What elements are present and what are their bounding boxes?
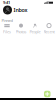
staticText: Files xyxy=(3,29,11,34)
button[interactable]: Account xyxy=(3,5,12,14)
staticText: 9:41 xyxy=(3,0,10,5)
button[interactable]: Files xyxy=(0,24,14,33)
staticText: Pinned xyxy=(1,18,12,23)
staticText: Recent xyxy=(43,29,54,34)
staticText: Inbox xyxy=(13,6,27,14)
button[interactable]: People xyxy=(28,24,42,33)
button[interactable]: Recent xyxy=(42,24,56,33)
button[interactable]: Compose xyxy=(44,91,50,97)
staticText: Photos xyxy=(15,29,26,34)
button[interactable]: Photos xyxy=(14,24,28,33)
staticText: People xyxy=(29,29,40,34)
